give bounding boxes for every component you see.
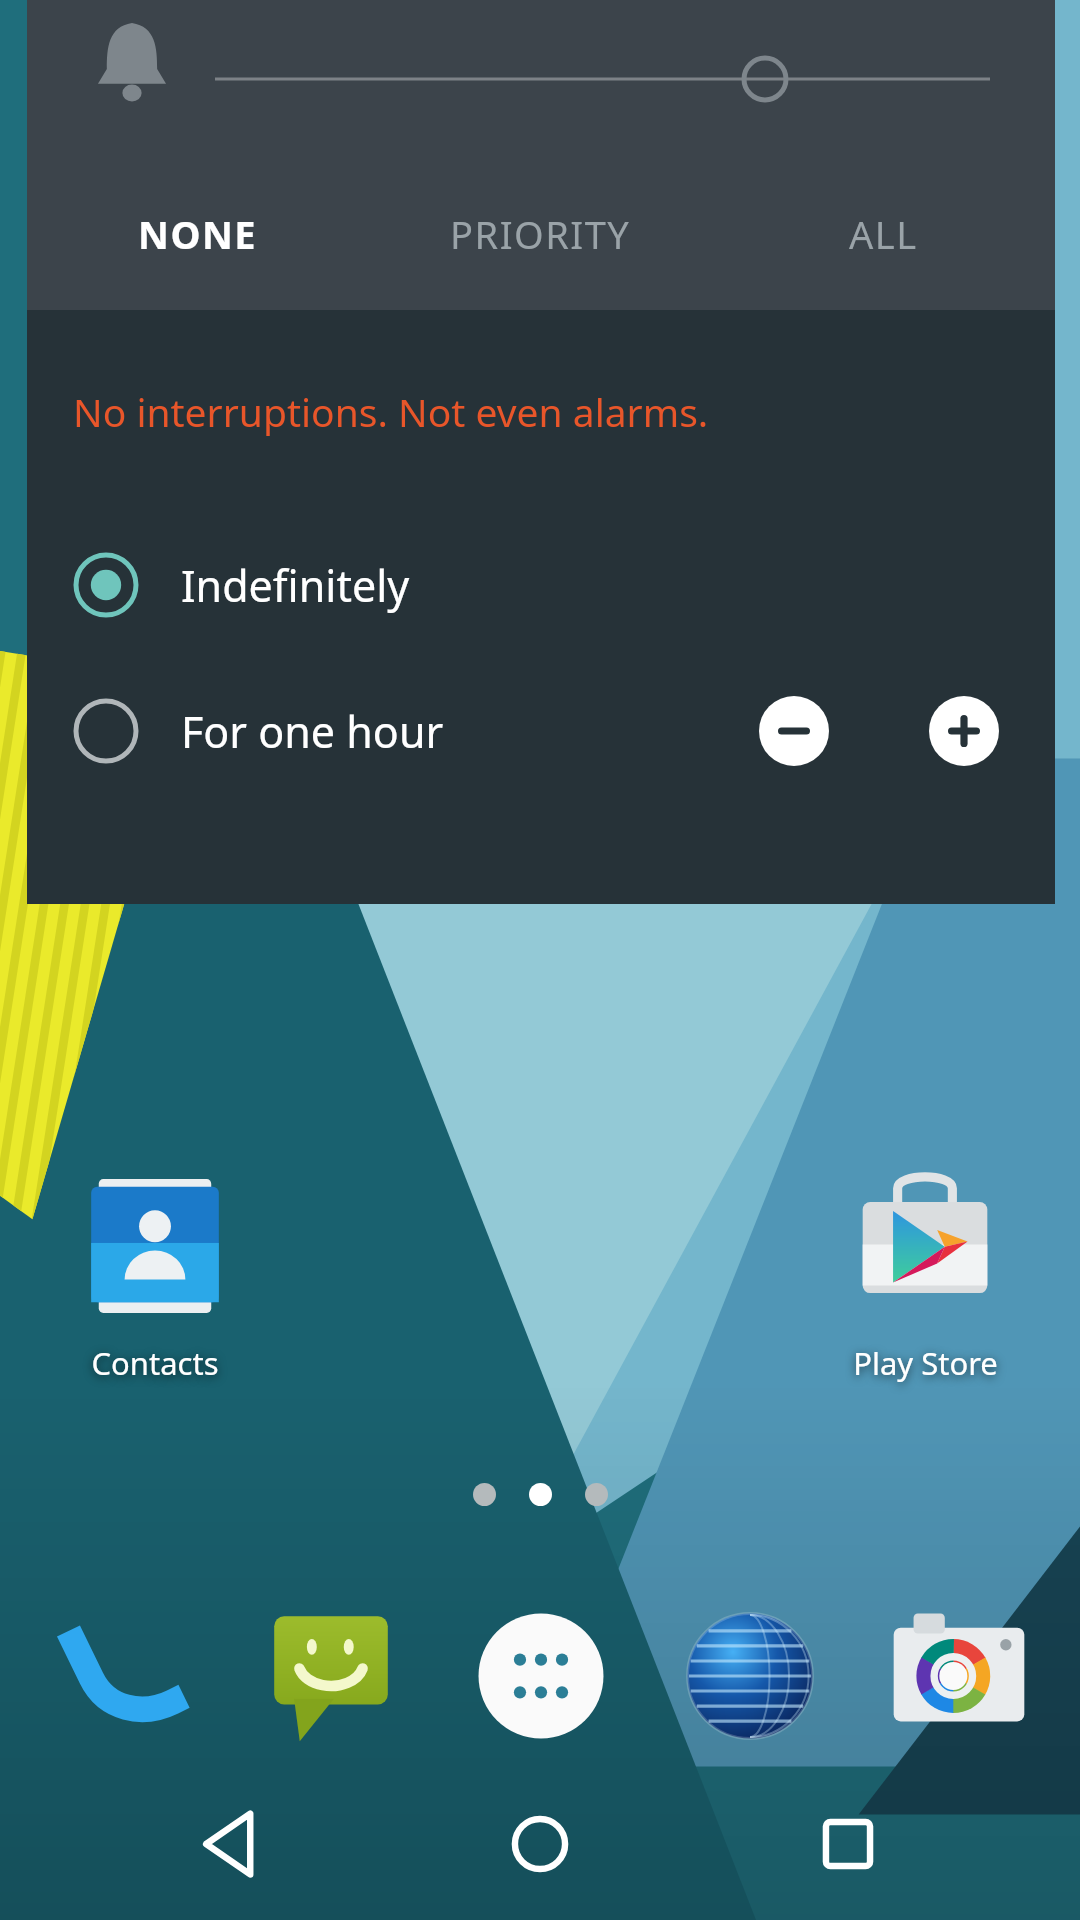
button[interactable]: Apps: [453, 1588, 628, 1763]
button[interactable]: Messaging: [243, 1588, 418, 1763]
staticText: Contacts: [91, 1342, 219, 1384]
staticText: Indefinitely: [181, 556, 410, 615]
button[interactable]: Volume: [27, 0, 1055, 158]
button[interactable]: Camera: [871, 1588, 1046, 1763]
button[interactable]: Increase: [929, 696, 999, 766]
button[interactable]: For one hour: [27, 670, 1055, 792]
staticText: For one hour: [181, 702, 444, 761]
staticText: NONE: [138, 208, 258, 260]
staticText: PRIORITY: [450, 208, 631, 260]
button[interactable]: Browser: [662, 1588, 837, 1763]
staticText: Play Store: [853, 1342, 998, 1384]
button[interactable]: Play Store: [800, 1170, 1050, 1384]
button[interactable]: ALL: [712, 158, 1055, 310]
button[interactable]: Recents: [772, 1768, 924, 1920]
button[interactable]: PRIORITY: [369, 158, 712, 310]
button[interactable]: Back: [156, 1768, 308, 1920]
staticText: No interruptions. Not even alarms.: [73, 385, 709, 438]
button[interactable]: Phone: [34, 1588, 209, 1763]
button[interactable]: Contacts: [30, 1170, 280, 1384]
button[interactable]: Indefinitely: [27, 524, 1055, 646]
staticText: ALL: [849, 208, 918, 260]
button[interactable]: Decrease: [759, 696, 829, 766]
button[interactable]: Home: [464, 1768, 616, 1920]
button[interactable]: NONE: [27, 158, 369, 310]
